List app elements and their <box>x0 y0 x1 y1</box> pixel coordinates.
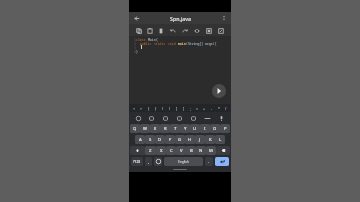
staticText: M <box>209 148 213 154</box>
staticText: ] <box>183 106 185 111</box>
staticText: 4 <box>130 50 136 54</box>
button[interactable]: K <box>205 135 215 144</box>
staticText: T <box>174 126 177 132</box>
button[interactable]: V <box>176 146 186 155</box>
staticText: void <box>166 42 176 46</box>
button[interactable]: ] <box>180 104 187 112</box>
button[interactable]: S <box>145 135 155 144</box>
button[interactable]: J <box>195 135 205 144</box>
button[interactable]: G <box>175 135 185 144</box>
staticText: I <box>204 126 206 132</box>
button[interactable]: Sticker <box>186 114 200 122</box>
button[interactable]: Code <box>191 26 203 35</box>
button[interactable]: [ <box>173 104 180 112</box>
button[interactable]: Format <box>203 26 215 35</box>
button[interactable]: { <box>145 104 152 112</box>
staticText: Q <box>133 126 137 132</box>
button[interactable]: * <box>215 104 222 112</box>
staticText: Spn.java <box>170 15 191 22</box>
button[interactable]: U <box>190 124 200 133</box>
button[interactable]: . <box>205 157 213 166</box>
staticText: Main <box>146 38 156 42</box>
button[interactable]: E <box>150 124 160 133</box>
button[interactable]: English <box>164 157 203 166</box>
button[interactable]: Q <box>130 124 140 133</box>
button[interactable]: F <box>165 135 175 144</box>
staticText: { <box>156 38 158 42</box>
button[interactable]: P <box>220 124 230 133</box>
button[interactable]: Redo <box>179 26 191 35</box>
button[interactable]: D <box>155 135 165 144</box>
staticText: H <box>188 137 192 143</box>
button[interactable]: B <box>186 146 196 155</box>
button[interactable]: + <box>201 104 208 112</box>
button[interactable]: } <box>152 104 159 112</box>
staticText: ; <box>190 106 191 111</box>
button[interactable]: ?123 <box>131 157 143 166</box>
button[interactable]: ) <box>166 104 173 112</box>
button[interactable]: T <box>170 124 180 133</box>
button[interactable]: ; <box>187 104 194 112</box>
staticText: 3 <box>130 46 136 50</box>
staticText: W <box>143 126 147 132</box>
button[interactable]: / <box>222 104 229 112</box>
staticText: E <box>154 126 157 132</box>
staticText: [ <box>176 106 178 111</box>
button[interactable]: Clipboard <box>200 114 214 122</box>
button[interactable]: M <box>206 146 216 155</box>
button[interactable]: = <box>194 104 201 112</box>
staticText: > <box>140 106 143 111</box>
button[interactable]: Back <box>132 14 141 23</box>
button[interactable]: ( <box>159 104 166 112</box>
button[interactable]: C <box>166 146 176 155</box>
button[interactable]: More options <box>220 14 228 22</box>
staticText: N <box>199 148 203 154</box>
staticText: F <box>169 137 172 143</box>
button[interactable]: > <box>138 104 145 112</box>
button[interactable]: Fullscreen <box>215 26 227 35</box>
staticText: Z <box>149 148 152 154</box>
button[interactable]: Paste <box>144 26 155 35</box>
staticText: K <box>209 137 212 143</box>
button[interactable]: Voice <box>214 114 228 122</box>
button[interactable]: L <box>215 135 225 144</box>
button[interactable]: O <box>210 124 220 133</box>
button[interactable]: R <box>160 124 170 133</box>
button[interactable]: Backspace <box>216 146 230 155</box>
button[interactable]: Settings <box>172 114 186 122</box>
button[interactable]: Google <box>132 114 145 122</box>
button[interactable]: I <box>200 124 210 133</box>
button[interactable]: H <box>185 135 195 144</box>
button[interactable]: Y <box>180 124 190 133</box>
button[interactable]: Enter <box>215 157 229 166</box>
staticText: D <box>158 137 162 143</box>
button[interactable]: - <box>208 104 215 112</box>
button[interactable]: Copy <box>133 26 144 35</box>
staticText: static <box>152 42 166 46</box>
staticText <box>136 46 142 50</box>
button[interactable]: N <box>196 146 206 155</box>
button[interactable]: < <box>131 104 138 112</box>
button[interactable]: Emoji <box>154 157 162 166</box>
button[interactable]: Clipboard <box>155 26 167 35</box>
button[interactable]: Translate <box>158 114 172 122</box>
button[interactable]: Z <box>145 146 156 155</box>
button[interactable]: Undo <box>167 26 179 35</box>
button[interactable]: X <box>156 146 166 155</box>
staticText: = <box>196 106 199 111</box>
button[interactable]: W <box>140 124 150 133</box>
staticText: public <box>136 42 152 46</box>
staticText: class <box>136 38 146 42</box>
staticText: (String[] args){ <box>186 42 217 46</box>
staticText: 1 <box>130 38 136 42</box>
staticText: P <box>224 126 227 132</box>
staticText: } <box>136 50 138 54</box>
button[interactable]: A <box>135 135 145 144</box>
button[interactable]: Shift <box>130 146 145 155</box>
button[interactable]: GIF <box>145 114 158 122</box>
button[interactable]: , <box>145 157 152 166</box>
staticText: V <box>180 148 183 154</box>
staticText: { <box>148 106 150 111</box>
staticText: X <box>160 148 163 154</box>
button[interactable]: Run <box>212 84 226 98</box>
